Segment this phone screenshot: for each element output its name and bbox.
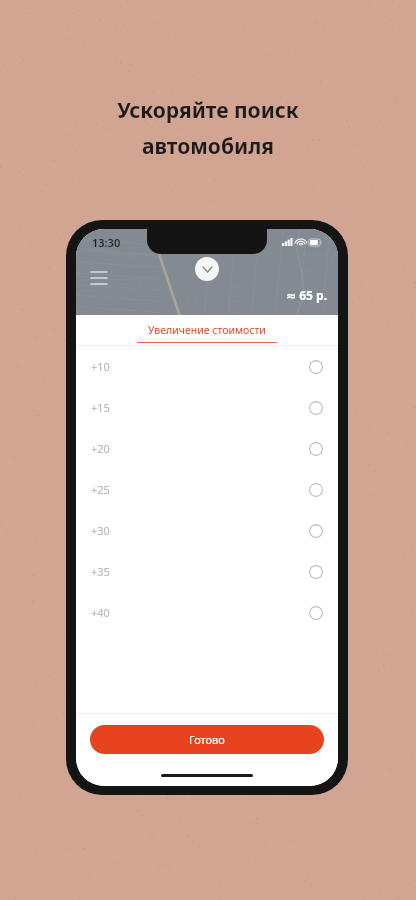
staticText: ≈ 65 р. <box>286 287 328 303</box>
button[interactable]: +30 <box>76 510 338 551</box>
button[interactable]: Menu <box>86 265 112 291</box>
staticText: +35 <box>91 564 110 579</box>
staticText: Увеличение стоимости <box>148 323 266 337</box>
button[interactable]: Collapse <box>195 257 219 281</box>
staticText: Готово <box>189 732 225 747</box>
staticText: +25 <box>91 482 110 497</box>
staticText: Ускоряйте поиск <box>117 96 299 125</box>
staticText: +30 <box>91 523 110 538</box>
staticText: +20 <box>91 441 110 456</box>
button[interactable]: +35 <box>76 551 338 592</box>
button[interactable]: Увеличение стоимости <box>76 315 338 345</box>
button[interactable]: Готово <box>90 725 324 754</box>
button[interactable]: +20 <box>76 428 338 469</box>
button[interactable]: +15 <box>76 387 338 428</box>
staticText: автомобиля <box>142 132 274 161</box>
staticText: +10 <box>91 359 110 374</box>
button[interactable]: +25 <box>76 469 338 510</box>
staticText: 13:30 <box>92 235 121 250</box>
staticText: +40 <box>91 605 110 620</box>
staticText: +15 <box>91 400 110 415</box>
button[interactable]: +10 <box>76 346 338 387</box>
button[interactable]: +40 <box>76 592 338 633</box>
